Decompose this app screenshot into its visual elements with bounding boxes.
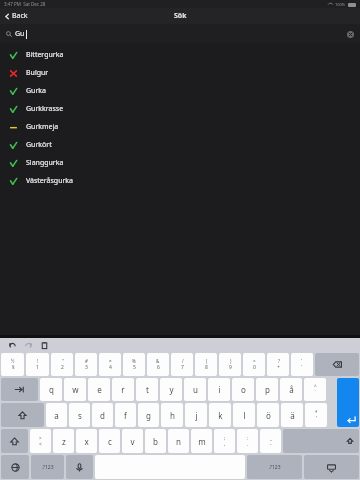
button[interactable]: ä [281,403,303,427]
button[interactable]: d [92,403,113,427]
button[interactable]: å [280,378,302,401]
button[interactable]: i [208,378,230,401]
button[interactable]: Clear text [346,30,354,38]
button[interactable]: t [136,378,158,401]
button[interactable]: Back [4,11,28,21]
button[interactable]: Gu [0,24,360,43]
button[interactable]: l [233,403,255,427]
button[interactable]: s [69,403,90,427]
button[interactable]: ; [214,429,235,453]
button[interactable]: : [237,429,258,453]
button[interactable]: Gurka [0,82,360,100]
button[interactable]: r [112,378,134,401]
staticText: : [247,435,249,441]
button[interactable]: u [184,378,206,401]
button[interactable]: Slanggurka [0,154,360,172]
button[interactable]: ) [219,353,241,376]
button[interactable]: Shift [283,429,359,453]
button[interactable]: ( [195,353,217,376]
button[interactable]: q [40,378,62,401]
button[interactable]: f [115,403,136,427]
button[interactable]: k [209,403,231,427]
button[interactable]: ! [26,353,49,376]
button[interactable]: Västeråsgurka [0,172,360,190]
button[interactable]: c [99,429,120,453]
staticText: c [108,436,112,447]
button[interactable]: # [75,353,97,376]
staticText: a [54,410,59,421]
staticText: m [198,436,206,447]
button[interactable]: " [51,353,73,376]
staticText: & [156,358,160,364]
button[interactable]: ½ [1,353,24,376]
button[interactable]: Gurkmeja [0,118,360,136]
staticText: . [247,441,249,448]
button[interactable]: Voice input [66,455,93,479]
button[interactable]: Hide keyboard [304,455,359,479]
button[interactable]: y [160,378,182,401]
button[interactable]: b [145,429,166,453]
staticText: < [39,441,42,448]
staticText: u [193,384,198,395]
button[interactable]: o [232,378,254,401]
button[interactable]: a [46,403,67,427]
button[interactable]: j [185,403,207,427]
button[interactable]: Paste [39,340,49,350]
button[interactable]: ¤ [99,353,121,376]
button[interactable]: Return [337,378,359,427]
staticText: k [218,410,223,421]
staticText: 3 [85,364,88,371]
staticText: Back [12,11,28,21]
button[interactable]: Gurkkrasse [0,100,360,118]
button[interactable]: Change keyboard [1,455,29,479]
button[interactable]: h [161,403,183,427]
button[interactable]: & [147,353,169,376]
button[interactable]: * [305,403,327,427]
button[interactable]: ? [267,353,289,376]
staticText: ? [278,358,280,364]
button[interactable]: ` [291,353,313,376]
button[interactable]: / [171,353,193,376]
button[interactable]: n [168,429,189,453]
button[interactable]: g [138,403,159,427]
button[interactable]: x [76,429,97,453]
button[interactable]: ö [257,403,279,427]
button[interactable]: z [53,429,74,453]
staticText: 0 [253,364,256,371]
staticText: ` [301,358,303,364]
button[interactable]: = [243,353,265,376]
button[interactable]: .?123 [31,455,64,479]
button[interactable]: Gurkört [0,136,360,154]
button[interactable]: v [122,429,143,453]
button[interactable]: Tab [1,378,38,401]
button[interactable]: Shift [1,429,28,453]
staticText: Bulgur [26,68,49,78]
button[interactable]: w [64,378,86,401]
button[interactable]: e [88,378,110,401]
button[interactable]: ^ [304,378,326,401]
staticText: 8 [205,364,208,371]
button[interactable]: > [30,429,51,453]
button[interactable]: % [123,353,145,376]
staticText: 100% [335,2,346,7]
staticText: 1 [36,364,39,371]
staticText: ä [290,410,295,421]
staticText: 3:47 PM Sat Dec 28 [4,1,46,7]
staticText: + [277,364,280,371]
button[interactable]: Redo [23,340,33,350]
staticText: ) [230,358,232,364]
button[interactable]: Undo [7,340,17,350]
staticText: = [253,358,256,364]
button[interactable]: Bittergurka [0,46,360,64]
button[interactable]: _ [260,429,281,453]
staticText: ^ [314,383,317,389]
button[interactable]: Caps lock [1,403,44,427]
button[interactable]: Bulgur [0,64,360,82]
staticText: Gurkkrasse [26,104,64,114]
staticText: q [49,384,54,395]
button[interactable]: Backspace [315,353,359,376]
button[interactable]: p [256,378,278,401]
button[interactable]: .?123 [247,455,302,479]
button[interactable]: m [191,429,212,453]
